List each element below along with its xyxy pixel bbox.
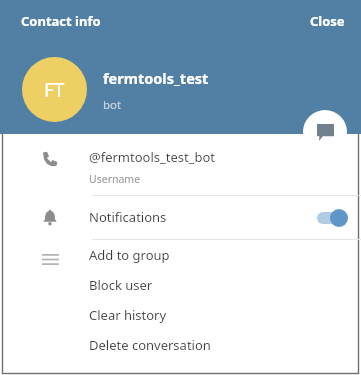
- button[interactable]: Block user: [0, 270, 361, 300]
- button[interactable]: Clear history: [0, 300, 361, 330]
- button[interactable]: Send message: [303, 110, 347, 154]
- staticText: Add to group: [89, 246, 170, 264]
- button[interactable]: @fermtools_test_bot: [0, 134, 361, 196]
- button[interactable]: Notifications: [0, 196, 361, 240]
- staticText: FT: [44, 77, 65, 103]
- button[interactable]: Contact info: [13, 4, 109, 38]
- button[interactable]: Add to group: [0, 240, 361, 270]
- staticText: fermtools_test: [103, 68, 209, 88]
- staticText: Close: [310, 12, 345, 30]
- staticText: Notifications: [89, 208, 167, 226]
- staticText: @fermtools_test_bot: [89, 148, 216, 166]
- staticText: Clear history: [89, 306, 167, 324]
- staticText: Username: [89, 172, 141, 186]
- button[interactable]: Close: [302, 4, 353, 38]
- staticText: Delete conversation: [89, 336, 211, 354]
- staticText: Contact info: [21, 12, 101, 30]
- button[interactable]: Delete conversation: [0, 330, 361, 360]
- staticText: bot: [103, 97, 122, 113]
- staticText: Block user: [89, 276, 153, 294]
- button[interactable]: Notifications toggle: [315, 208, 349, 228]
